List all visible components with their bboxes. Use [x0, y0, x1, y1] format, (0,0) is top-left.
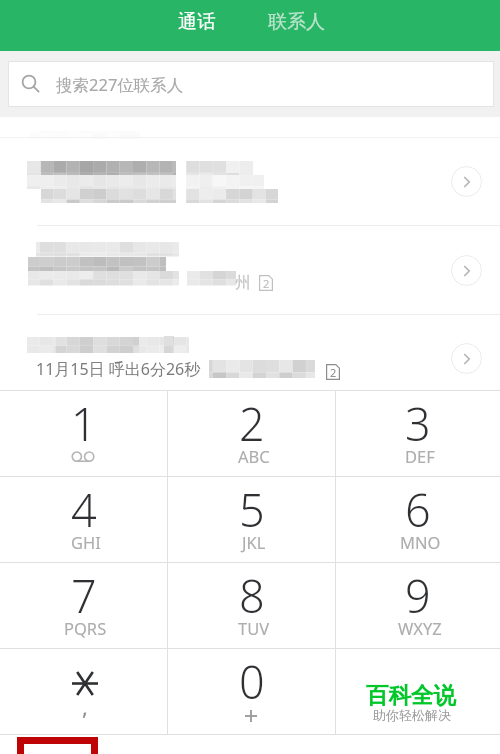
staticText: ABC	[238, 445, 270, 467]
staticText: TUV	[238, 617, 270, 639]
button[interactable]: 9	[336, 563, 500, 648]
staticText: 3	[405, 393, 431, 449]
button[interactable]: 5	[168, 477, 335, 562]
staticText: 2	[330, 365, 337, 380]
button[interactable]: 3	[336, 391, 500, 476]
staticText: 11月15日 呼出6分26秒	[36, 358, 201, 380]
staticText: 州	[235, 273, 251, 293]
button[interactable]: ,	[0, 649, 167, 734]
staticText: 通话	[178, 10, 216, 34]
button[interactable]: 0	[168, 649, 335, 734]
staticText: 2	[239, 393, 265, 449]
staticText: 2	[263, 276, 270, 291]
staticText: 7	[71, 565, 97, 621]
staticText: ,	[82, 691, 88, 721]
staticText: 0	[239, 651, 265, 707]
staticText: DEF	[405, 445, 435, 467]
button[interactable]: 通话	[170, 0, 224, 44]
button[interactable]: 2	[168, 391, 335, 476]
button[interactable]: 6	[336, 477, 500, 562]
staticText: GHI	[71, 531, 101, 553]
button[interactable]	[0, 315, 500, 390]
button[interactable]: Call details	[451, 343, 482, 374]
button[interactable]: 8	[168, 563, 335, 648]
staticText: 1	[71, 393, 97, 449]
button[interactable]: Call details	[451, 166, 482, 197]
button[interactable]: 搜索227位联系人	[8, 61, 494, 107]
button[interactable]: 4	[0, 477, 167, 562]
staticText: JKL	[242, 531, 266, 553]
staticText: 4	[71, 479, 97, 535]
button[interactable]	[336, 649, 500, 734]
staticText: PQRS	[64, 617, 107, 639]
staticText: MNO	[400, 531, 441, 553]
staticText: 百科全说	[366, 681, 456, 709]
staticText: 9	[405, 565, 431, 621]
staticText: WXYZ	[398, 617, 442, 639]
button[interactable]: 1	[0, 391, 167, 476]
button[interactable]: Call details	[451, 255, 482, 286]
button[interactable]	[0, 226, 500, 314]
staticText: 8	[239, 565, 265, 621]
button[interactable]: 7	[0, 563, 167, 648]
staticText: 联系人	[268, 10, 325, 34]
staticText: 助你轻松解决	[373, 707, 451, 723]
staticText: 6	[405, 479, 431, 535]
staticText: 5	[239, 479, 265, 535]
button[interactable]: 联系人	[258, 0, 334, 44]
staticText: 搜索227位联系人	[56, 73, 184, 96]
button[interactable]	[0, 117, 500, 225]
